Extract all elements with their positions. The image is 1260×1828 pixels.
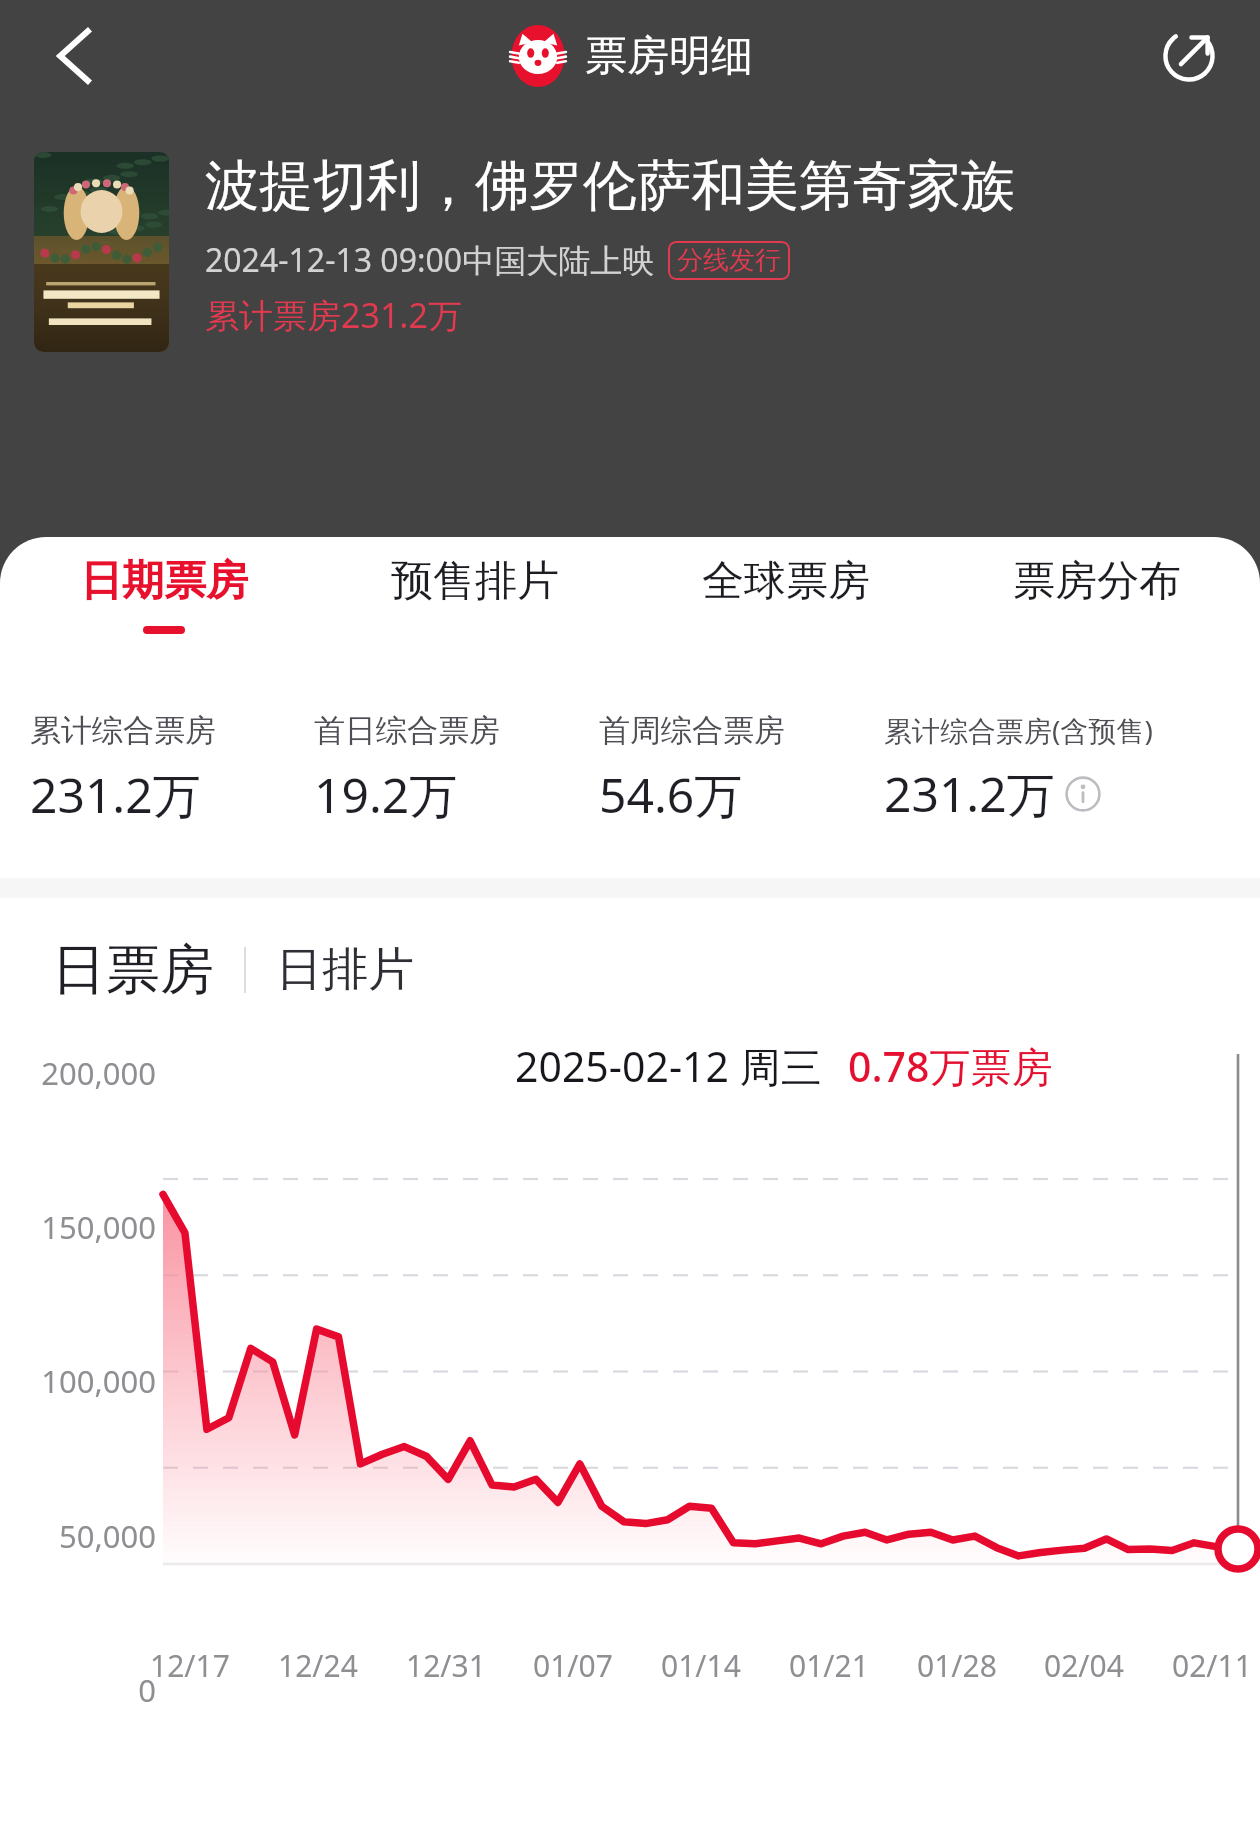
staticText: 日期票房 bbox=[80, 555, 248, 608]
button[interactable]: Back bbox=[28, 10, 120, 102]
staticText: 01/07 bbox=[533, 1645, 613, 1686]
staticText: 150,000 bbox=[8, 1206, 156, 1248]
staticText: 全球票房 bbox=[702, 555, 870, 608]
button[interactable]: Share bbox=[1144, 11, 1234, 101]
button[interactable]: 2025-02-12 周三 bbox=[479, 1014, 1089, 1118]
staticText: 100,000 bbox=[8, 1360, 156, 1402]
staticText: 预售排片 bbox=[391, 555, 559, 608]
staticText: 波提切利，佛罗伦萨和美第奇家族 bbox=[205, 152, 1015, 220]
staticText: 12/17 bbox=[150, 1645, 230, 1686]
staticText: 200,000 bbox=[8, 1052, 156, 1094]
staticText: 0 bbox=[8, 1669, 156, 1711]
staticText: 231.2万 bbox=[884, 761, 1055, 827]
staticText: 累计综合票房(含预售) bbox=[884, 711, 1153, 749]
staticText: 231.2万 bbox=[30, 762, 201, 828]
button[interactable]: 预售排片 bbox=[319, 555, 630, 665]
button[interactable]: 全球票房 bbox=[630, 555, 941, 665]
staticText: 票房分布 bbox=[1013, 555, 1181, 608]
staticText: 累计综合票房 bbox=[30, 711, 216, 750]
staticText: 票房明细 bbox=[585, 30, 753, 83]
staticText: 首周综合票房 bbox=[599, 711, 785, 750]
button[interactable]: 日票房 bbox=[52, 936, 214, 1004]
staticText: 首日综合票房 bbox=[314, 711, 500, 750]
staticText: 54.6万 bbox=[599, 762, 743, 828]
staticText: 日排片 bbox=[276, 941, 414, 999]
staticText: 12/31 bbox=[406, 1645, 486, 1686]
staticText: 02/11 bbox=[1172, 1645, 1252, 1686]
staticText: 01/21 bbox=[789, 1645, 869, 1686]
staticText: 分线发行 bbox=[677, 244, 781, 277]
button[interactable]: 日排片 bbox=[276, 941, 414, 999]
button[interactable]: 票房分布 bbox=[941, 555, 1252, 665]
staticText: 19.2万 bbox=[314, 762, 458, 828]
staticText: 02/04 bbox=[1044, 1645, 1124, 1686]
button[interactable]: 日期票房 bbox=[8, 555, 319, 665]
staticText: 2025-02-12 周三 bbox=[515, 1038, 822, 1094]
staticText: 累计票房231.2万 bbox=[205, 292, 462, 338]
staticText: 50,000 bbox=[8, 1515, 156, 1557]
button[interactable]: 波提切利，佛罗伦萨和美第奇家族 bbox=[34, 152, 1234, 352]
staticText: 日票房 bbox=[52, 936, 214, 1004]
staticText: 01/14 bbox=[661, 1645, 741, 1686]
button[interactable]: Info bbox=[1065, 776, 1101, 812]
staticText: 01/28 bbox=[917, 1645, 997, 1686]
staticText: 2024-12-13 09:00中国大陆上映 bbox=[205, 238, 655, 282]
staticText: 12/24 bbox=[278, 1645, 358, 1686]
staticText: 0.78万票房 bbox=[848, 1038, 1053, 1094]
